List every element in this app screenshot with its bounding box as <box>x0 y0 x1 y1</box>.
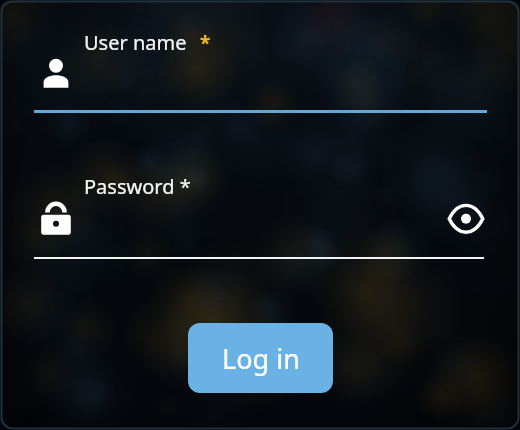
staticText: Log in <box>222 340 300 377</box>
button[interactable]: Log in <box>188 323 333 393</box>
button[interactable]: Show password <box>446 200 486 240</box>
button[interactable]: User name field <box>36 55 76 95</box>
staticText: User name <box>84 29 187 56</box>
staticText: * <box>200 30 211 56</box>
staticText: Password * <box>84 173 191 200</box>
button[interactable]: Password field <box>36 198 76 238</box>
